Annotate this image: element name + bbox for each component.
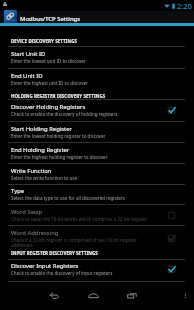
button[interactable]: End Holding Register: [0, 142, 194, 164]
button[interactable]: Discover Holding Registers: [0, 99, 194, 121]
staticText: Enter the lowest holding register to dis…: [11, 133, 106, 139]
button[interactable]: Back: [44, 285, 65, 306]
staticText: Select the data type to use for all disc…: [11, 195, 125, 201]
button[interactable]: End Unit ID: [0, 68, 194, 90]
staticText: Select the write function to use: [11, 175, 78, 181]
button[interactable]: More options: [176, 286, 194, 304]
staticText: Word Addressing: [11, 229, 59, 237]
button[interactable]: Start Holding Register: [0, 121, 194, 143]
staticText: Discover Input Registers: [11, 262, 79, 270]
staticText: Enter the highest unit ID to discover: [11, 80, 88, 86]
staticText: Check to enable the discovery of holding…: [11, 111, 118, 117]
staticText: Check if a 32-bit register is comprised …: [11, 237, 159, 249]
button[interactable]: Type: [0, 183, 194, 205]
staticText: Word Swap: [11, 208, 43, 216]
staticText: Check to enable the discovery of input r…: [11, 270, 113, 276]
staticText: HOLDING REGISTER DISCOVERY SETTINGS: [11, 93, 106, 99]
staticText: Start Unit ID: [11, 50, 46, 58]
button[interactable]: Discover Input Registers: [0, 258, 194, 280]
button[interactable]: Write Function: [0, 163, 194, 185]
staticText: DEVICE DISCOVERY SETTINGS: [11, 38, 77, 44]
staticText: 2:20: [177, 1, 192, 11]
staticText: End Unit ID: [11, 72, 43, 80]
staticText: Modbus/TCP Settings: [20, 15, 81, 23]
button[interactable]: Recent apps: [122, 285, 143, 306]
staticText: Enter the highest holding register to di…: [11, 154, 108, 160]
button[interactable]: Word Swap: [0, 204, 194, 226]
staticText: Discover Holding Registers: [11, 103, 86, 111]
button[interactable]: Home: [83, 285, 104, 306]
button[interactable]: Start Unit ID: [0, 46, 194, 68]
staticText: INPUT REGISTER DISCOVERY SETTINGS: [11, 250, 98, 256]
staticText: Write Function: [11, 167, 52, 175]
staticText: Type: [11, 187, 25, 195]
button[interactable]: Word Addressing: [0, 225, 194, 252]
staticText: Enter the lowest unit ID to discover: [11, 58, 86, 64]
staticText: End Holding Register: [11, 146, 70, 154]
staticText: Start Holding Register: [11, 125, 72, 133]
staticText: Check to swap the 16-bit words which com…: [11, 216, 148, 222]
